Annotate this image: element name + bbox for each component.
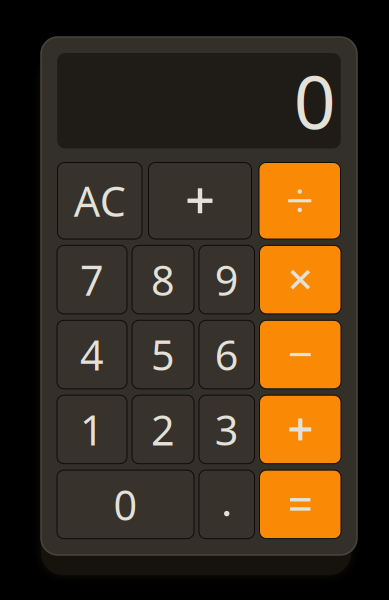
button[interactable]: 7 bbox=[57, 245, 127, 314]
staticText: 4 bbox=[80, 327, 104, 382]
button[interactable]: 9 bbox=[199, 245, 254, 314]
button[interactable]: 2 bbox=[132, 395, 194, 464]
staticText: 7 bbox=[80, 252, 104, 307]
button[interactable]: 6 bbox=[199, 320, 254, 389]
button[interactable]: 5 bbox=[132, 320, 194, 389]
staticText: 5 bbox=[151, 327, 175, 382]
button[interactable]: Multiply bbox=[259, 245, 341, 314]
staticText: 3 bbox=[215, 402, 239, 457]
staticText: 8 bbox=[151, 252, 175, 307]
button[interactable]: Plus bbox=[148, 162, 251, 239]
staticText: 2 bbox=[151, 402, 175, 457]
staticText: 0 bbox=[113, 477, 137, 532]
button[interactable]: 4 bbox=[57, 320, 127, 389]
button[interactable]: AC bbox=[57, 162, 142, 239]
staticText: 1 bbox=[80, 402, 104, 457]
button[interactable]: Divide bbox=[259, 162, 340, 239]
button[interactable]: 0 bbox=[57, 470, 194, 539]
staticText: 0 bbox=[294, 52, 336, 149]
button[interactable]: Decimal point bbox=[199, 470, 254, 539]
button[interactable]: Plus bbox=[259, 395, 341, 464]
button[interactable]: 3 bbox=[199, 395, 254, 464]
staticText: 6 bbox=[215, 327, 239, 382]
button[interactable]: 1 bbox=[57, 395, 127, 464]
button[interactable]: 8 bbox=[132, 245, 194, 314]
button[interactable]: Minus bbox=[259, 320, 341, 389]
staticText: AC bbox=[74, 173, 126, 228]
staticText: 9 bbox=[215, 252, 239, 307]
button[interactable]: Equals bbox=[259, 470, 341, 539]
